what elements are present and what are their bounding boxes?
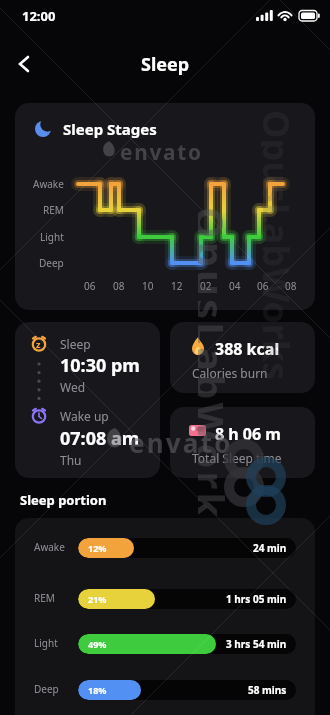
staticText: 49%	[88, 638, 107, 650]
staticText: 12	[171, 279, 183, 293]
staticText: Light	[40, 230, 64, 244]
staticText: Total Sleep time	[192, 450, 282, 466]
staticText: 1 hrs 05 min	[226, 592, 287, 606]
staticText: Wake up	[60, 408, 109, 424]
staticText: Sleep Stages	[63, 119, 157, 139]
staticText: REM	[34, 591, 55, 605]
staticText: 24 min	[253, 541, 287, 555]
button[interactable]	[8, 48, 40, 80]
staticText: Sleep portion	[20, 491, 107, 509]
staticText: envato	[120, 138, 203, 166]
staticText: envato	[129, 425, 233, 460]
staticText: 3 hrs 54 min	[226, 637, 287, 651]
staticText: 18%	[88, 684, 107, 696]
button[interactable]: z	[15, 322, 160, 478]
staticText: 12:00	[22, 7, 56, 25]
staticText: 58 mins	[248, 683, 287, 697]
button[interactable]: 12%	[78, 538, 296, 558]
staticText: 06	[84, 279, 96, 293]
staticText: 12%	[88, 542, 107, 554]
button[interactable]: 49%	[78, 634, 296, 654]
staticText: Sleep	[60, 336, 91, 352]
staticText: 08	[113, 279, 125, 293]
staticText: Wed	[60, 379, 86, 395]
button[interactable]: 388 kcal	[170, 322, 315, 393]
staticText: 04	[229, 279, 241, 293]
staticText: 02	[200, 279, 212, 293]
button[interactable]: 8 h 06 m	[170, 407, 315, 478]
staticText: 08	[285, 279, 297, 293]
staticText: Awake	[33, 177, 64, 191]
button[interactable]: 18%	[78, 680, 296, 700]
staticText: Deep	[39, 256, 64, 270]
staticText: 388 kcal	[215, 338, 280, 360]
staticText: Calories burn	[192, 365, 268, 381]
staticText: REM	[43, 203, 64, 217]
staticText: Light	[34, 636, 58, 650]
staticText: Deep	[34, 682, 59, 696]
staticText: 21%	[88, 593, 107, 605]
staticText: 10:30 pm	[60, 353, 140, 378]
staticText: 8 h 06 m	[215, 423, 281, 445]
staticText: OpusLabWorks	[261, 110, 301, 381]
staticText: 10	[142, 279, 154, 293]
button[interactable]: 21%	[78, 589, 296, 609]
staticText: z	[36, 338, 41, 350]
staticText: Thu	[60, 452, 82, 468]
staticText: 06	[257, 279, 269, 293]
staticText: 07:08 am	[60, 426, 140, 451]
staticText: OpusLabWorks	[198, 207, 238, 537]
staticText: Awake	[34, 540, 65, 554]
staticText: Sleep	[141, 52, 190, 77]
